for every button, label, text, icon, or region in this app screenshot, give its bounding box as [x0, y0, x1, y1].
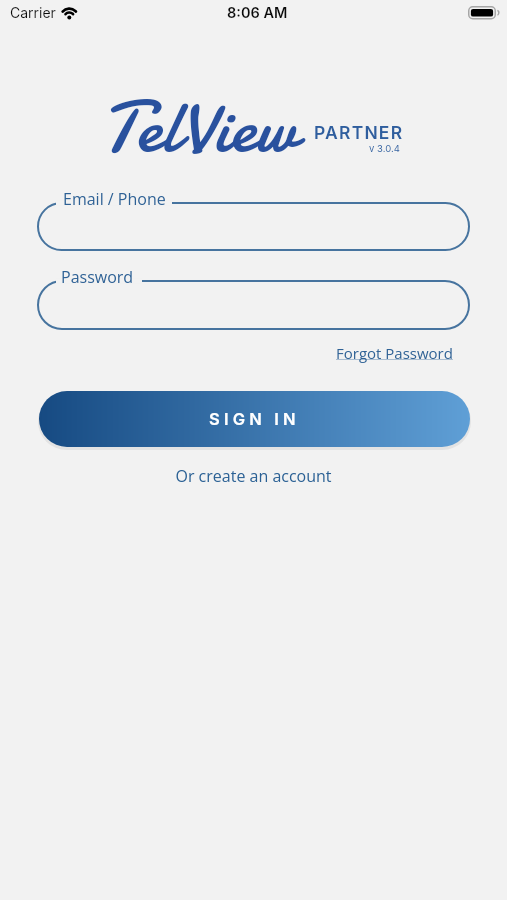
button[interactable]: Forgot Password: [336, 343, 453, 363]
staticText: Password: [61, 266, 134, 288]
button[interactable]: Or create an account: [175, 465, 332, 487]
button[interactable]: SIGN IN: [39, 391, 470, 447]
staticText: TelView: [102, 78, 297, 177]
staticText: SIGN IN: [209, 409, 300, 429]
staticText: Email / Phone: [63, 188, 166, 210]
staticText: PARTNER: [314, 122, 404, 143]
staticText: 8:06 AM: [227, 4, 288, 22]
button[interactable]: [37, 202, 470, 251]
staticText: Carrier: [10, 4, 56, 21]
staticText: v 3.0.4: [369, 143, 400, 154]
button[interactable]: [37, 280, 470, 330]
